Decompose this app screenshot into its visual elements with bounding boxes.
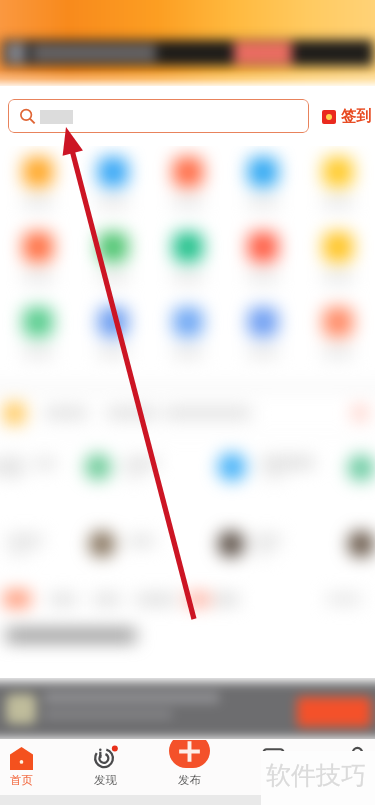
button[interactable]: 我的 xyxy=(315,739,375,795)
button[interactable]: 发现 xyxy=(63,739,147,795)
staticText: 签到 xyxy=(341,107,371,126)
staticText: 发现 xyxy=(94,773,117,787)
button[interactable]: 发布 xyxy=(147,739,231,795)
button[interactable] xyxy=(8,99,309,133)
other: 消息 xyxy=(262,746,285,769)
staticText: 首页 xyxy=(10,773,33,787)
button[interactable]: 发布 xyxy=(169,740,210,774)
staticText: 我的 xyxy=(346,773,369,787)
staticText: 发布 xyxy=(178,773,201,787)
staticText: 消息 xyxy=(262,773,285,787)
staticText: 软件技巧 xyxy=(266,760,366,791)
button[interactable]: 签到 xyxy=(322,107,371,126)
button[interactable]: 消息 xyxy=(231,739,315,795)
other: 发现 xyxy=(93,746,117,770)
button[interactable]: 首页 xyxy=(0,739,63,795)
other: 我的 xyxy=(346,746,369,769)
other: 首页 xyxy=(10,747,33,770)
